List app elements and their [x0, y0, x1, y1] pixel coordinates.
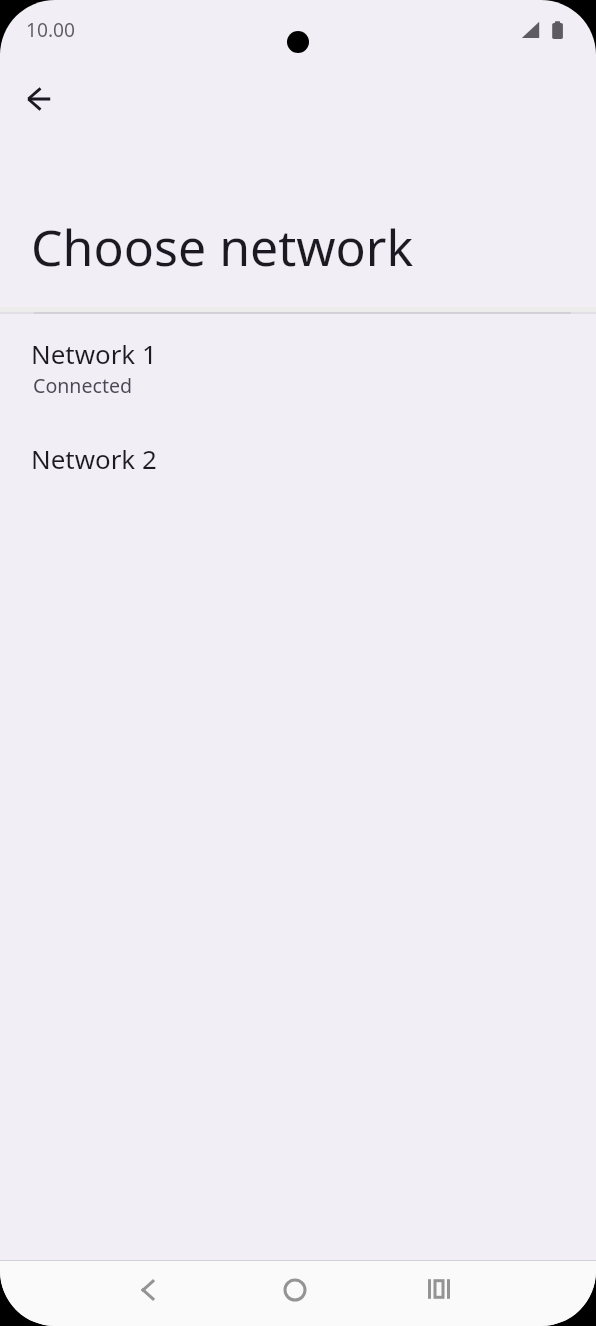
button[interactable]: Recent apps — [403, 1261, 475, 1326]
button[interactable]: Home — [259, 1261, 331, 1326]
button[interactable]: Network 1 — [0, 314, 596, 419]
staticText: 10.00 — [26, 16, 76, 42]
button[interactable]: Back — [112, 1261, 184, 1326]
staticText: Network 2 — [31, 441, 157, 476]
staticText: Network 1 — [31, 336, 157, 371]
button[interactable]: Network 2 — [0, 419, 596, 524]
button[interactable]: Navigate up — [14, 75, 62, 123]
staticText: Choose network — [31, 213, 414, 281]
staticText: Connected — [33, 372, 133, 399]
